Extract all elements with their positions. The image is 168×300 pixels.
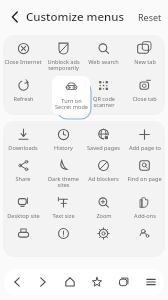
button[interactable]: Refresh xyxy=(3,75,43,106)
button[interactable]: Back xyxy=(4,269,30,295)
button[interactable] xyxy=(43,75,83,106)
staticText: Reset xyxy=(138,11,162,23)
button[interactable]: Reset xyxy=(138,11,162,23)
staticText: Close Internet xyxy=(4,58,42,66)
staticText: Share xyxy=(15,175,31,183)
button[interactable]: Dark theme sites xyxy=(43,155,83,192)
button[interactable]: QR code scanner xyxy=(83,75,124,112)
button[interactable]: Share xyxy=(3,155,43,186)
button[interactable]: Bookmarks xyxy=(83,269,110,295)
button[interactable]: Ad blockers xyxy=(83,155,124,186)
staticText: Find on page xyxy=(127,175,162,183)
button[interactable]: Text size xyxy=(43,192,83,223)
button[interactable] xyxy=(83,223,124,254)
staticText: QR code scanner xyxy=(93,95,115,109)
staticText: Turn on Secret mode xyxy=(55,97,88,111)
staticText: Zoom xyxy=(96,212,112,220)
staticText: Refresh xyxy=(13,95,34,103)
button[interactable]: Unblock ads temporarily xyxy=(43,38,83,75)
staticText: Unblock ads temporarily xyxy=(47,58,80,72)
button[interactable]: Forward xyxy=(30,269,56,295)
button[interactable]: Tabs xyxy=(110,269,137,295)
staticText: Saved pages xyxy=(87,144,120,152)
button[interactable]: Close tab xyxy=(124,75,165,106)
staticText: Desktop site xyxy=(7,212,40,220)
button[interactable]: Zoom xyxy=(83,192,124,223)
button[interactable]: Add-ons xyxy=(124,192,165,223)
staticText: Downloads xyxy=(8,144,38,152)
button[interactable]: Saved pages xyxy=(83,124,124,155)
staticText: Ad blockers xyxy=(88,175,119,183)
button[interactable] xyxy=(43,223,83,254)
button[interactable]: Downloads xyxy=(3,124,43,155)
button[interactable] xyxy=(3,223,43,254)
button[interactable]: Menu xyxy=(137,269,164,295)
staticText: Web search xyxy=(88,58,119,66)
staticText: Dark theme sites xyxy=(48,175,79,189)
staticText: Add page to xyxy=(129,144,161,152)
staticText: New tab xyxy=(134,58,156,66)
staticText: Add-ons xyxy=(134,212,156,220)
button[interactable]: Desktop site xyxy=(3,192,43,223)
button[interactable]: Web search xyxy=(83,38,124,69)
button[interactable]: New tab xyxy=(124,38,165,69)
staticText: Customize menus xyxy=(26,9,125,25)
button[interactable]: Find on page xyxy=(124,155,165,186)
button[interactable]: Add page to xyxy=(124,124,165,155)
button[interactable]: History xyxy=(43,124,83,155)
staticText: Text size xyxy=(52,212,75,220)
button[interactable]: Close Internet xyxy=(3,38,43,69)
button[interactable]: Back xyxy=(5,7,25,27)
staticText: History xyxy=(54,144,73,152)
button[interactable] xyxy=(124,223,165,254)
button[interactable]: Home xyxy=(56,269,83,295)
button[interactable]: Turn on Secret mode xyxy=(52,76,90,115)
staticText: Close tab xyxy=(132,95,157,103)
